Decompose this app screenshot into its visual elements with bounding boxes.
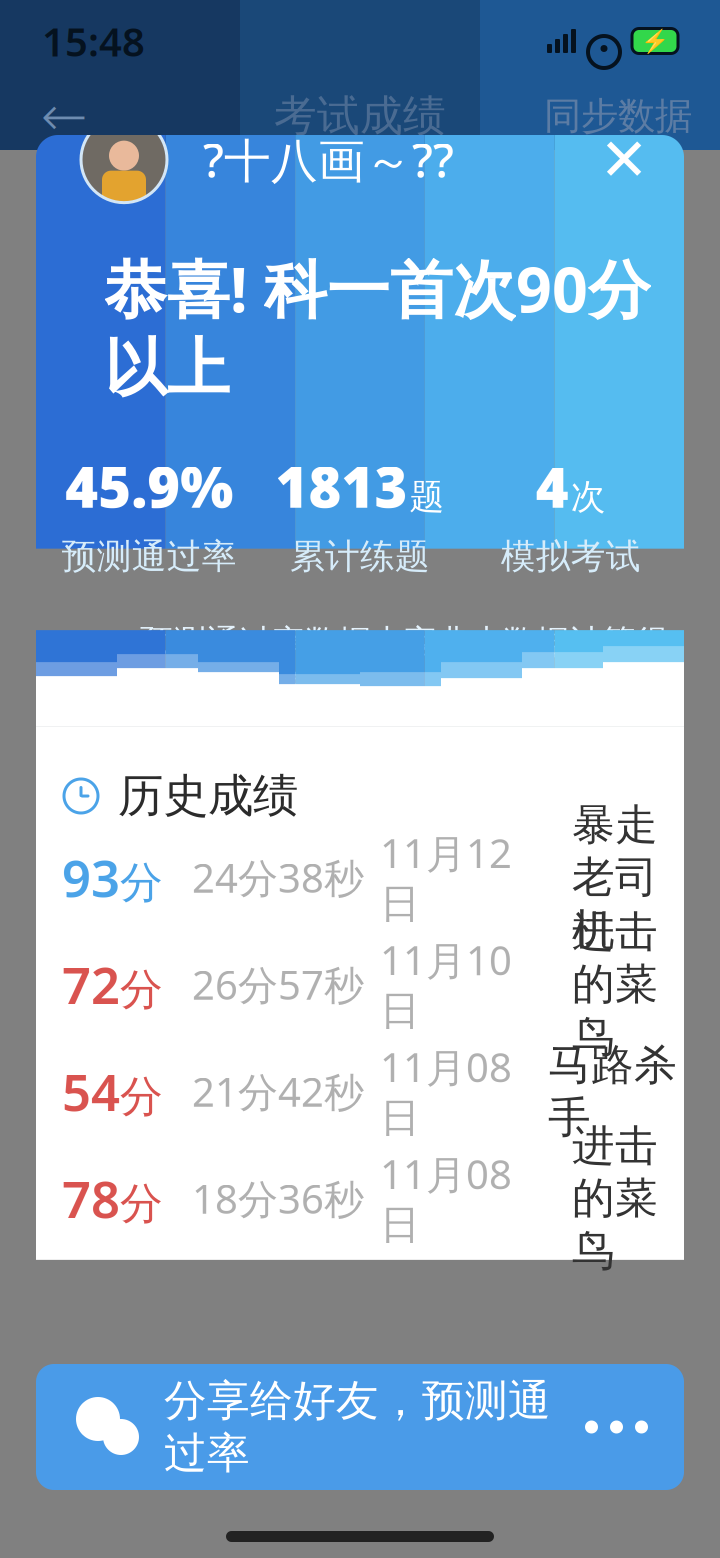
staticText: 分享给好友，预测通过率 <box>164 1375 551 1479</box>
staticText: 分 <box>120 1178 163 1230</box>
staticText: 1813 <box>275 449 407 523</box>
staticText: 分 <box>120 1071 163 1123</box>
staticText: ← <box>40 84 87 148</box>
staticText: 题 <box>409 476 444 518</box>
staticText: 11月12日 <box>380 826 512 928</box>
button[interactable]: 分享给好友，预测通过率 <box>36 1364 684 1490</box>
staticText: 分 <box>120 857 163 909</box>
button[interactable]: Back <box>28 86 100 146</box>
staticText: ?十八画～?? <box>203 129 454 191</box>
staticText: ! <box>102 641 111 684</box>
staticText: 恭喜! 科一首次90分以上 <box>104 247 651 407</box>
staticText: 马路杀手 <box>548 1039 677 1144</box>
staticText: 考试成绩 <box>274 90 446 142</box>
staticText: 54 <box>62 1058 120 1125</box>
staticText: 同步数据 <box>544 93 692 139</box>
staticText: 11月10日 <box>380 933 512 1035</box>
staticText: 进击的菜鸟 <box>572 1120 658 1277</box>
staticText: 历史成绩 <box>118 768 298 824</box>
staticText: 18分36秒 <box>192 1172 364 1225</box>
button[interactable]: 72 <box>36 931 684 1038</box>
button[interactable]: 同步数据 <box>544 86 692 146</box>
staticText: 21分42秒 <box>192 1065 364 1118</box>
staticText: 11月08日 <box>380 1040 512 1142</box>
staticText: 次 <box>571 476 606 518</box>
staticText: 26分57秒 <box>192 958 364 1011</box>
staticText: 11月08日 <box>380 1147 512 1249</box>
staticText: 暴走老司机 <box>572 799 658 956</box>
staticText: 预测通过率 <box>62 535 237 578</box>
staticText: 模拟考试 <box>501 535 641 578</box>
staticText: 45.9% <box>65 449 233 523</box>
staticText: ✕ <box>599 126 648 193</box>
staticText: 15:48 <box>42 14 145 67</box>
button[interactable]: 93 <box>36 824 684 931</box>
staticText: 累计练题 <box>290 535 430 578</box>
button[interactable]: Close <box>590 126 658 194</box>
staticText: 72 <box>62 951 120 1018</box>
staticText: ⚡ <box>641 28 669 54</box>
staticText: 24分38秒 <box>192 851 364 904</box>
staticText: 4 <box>536 449 569 523</box>
staticText: 预测通过率数据由宝典大数据计算得出，仅供参考 <box>140 622 668 704</box>
button[interactable]: 54 <box>36 1038 703 1145</box>
staticText: 78 <box>62 1165 120 1232</box>
staticText: 93 <box>62 844 120 911</box>
staticText: 分 <box>120 964 163 1016</box>
staticText: 进击的菜鸟 <box>572 906 658 1063</box>
button[interactable]: 78 <box>36 1145 684 1252</box>
